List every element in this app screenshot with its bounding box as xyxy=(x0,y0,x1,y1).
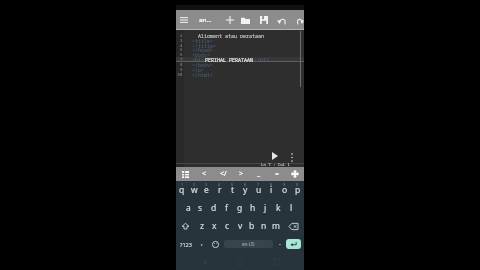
staticText: en-US xyxy=(242,241,255,247)
button[interactable]: Open folder xyxy=(237,10,254,30)
button[interactable]: r xyxy=(213,181,226,199)
staticText: w xyxy=(191,184,198,196)
staticText: Aligment atau perataan xyxy=(192,33,265,38)
button[interactable]: d xyxy=(207,199,220,217)
button[interactable]: p xyxy=(291,181,304,199)
button[interactable]: u xyxy=(252,181,265,199)
staticText: PERIHAL PERATAAN xyxy=(205,57,254,62)
button[interactable]: Undo xyxy=(273,10,290,30)
button[interactable]: settings xyxy=(286,167,304,181)
button[interactable]: eq xyxy=(268,167,286,181)
button[interactable]: m xyxy=(270,217,282,235)
staticText: l xyxy=(290,202,293,214)
staticText: v xyxy=(238,220,243,232)
staticText: . xyxy=(279,238,281,248)
button[interactable]: lt xyxy=(195,167,214,181)
button[interactable]: v xyxy=(234,217,246,235)
staticText: <body> xyxy=(192,52,211,57)
button[interactable]: Emoji xyxy=(208,235,222,253)
button[interactable]: a xyxy=(182,199,194,217)
button[interactable]: s xyxy=(194,199,207,217)
staticText: 5 xyxy=(180,47,183,52)
button[interactable]: q xyxy=(176,181,188,199)
staticText: </h1> xyxy=(254,57,270,62)
button[interactable]: n xyxy=(258,217,270,235)
staticText: o xyxy=(282,184,288,196)
button[interactable]: j xyxy=(259,199,272,217)
staticText: </p> xyxy=(192,67,205,72)
button[interactable]: Run xyxy=(269,150,281,162)
staticText: 8 xyxy=(180,62,183,67)
staticText: 9 xyxy=(180,67,183,72)
staticText: g xyxy=(237,202,243,214)
button[interactable]: l xyxy=(285,199,298,217)
button[interactable]: k xyxy=(272,199,285,217)
staticText: x xyxy=(212,220,217,232)
staticText: d xyxy=(211,202,217,214)
button[interactable]: ?123 xyxy=(176,235,196,253)
staticText: > xyxy=(239,169,244,179)
staticText: q xyxy=(179,184,185,196)
button[interactable]: i xyxy=(265,181,278,199)
button[interactable]: e xyxy=(200,181,213,199)
staticText: = xyxy=(275,169,280,179)
button[interactable]: Period xyxy=(274,235,286,253)
staticText: e xyxy=(204,184,209,196)
button[interactable]: Backspace xyxy=(282,217,304,235)
staticText: 5 xyxy=(231,182,234,187)
button[interactable]: b xyxy=(246,217,258,235)
staticText: </title> xyxy=(192,43,217,48)
button[interactable]: Redo xyxy=(297,10,304,30)
button[interactable]: Shift xyxy=(176,217,195,235)
button[interactable]: More options xyxy=(287,152,297,162)
button[interactable]: t xyxy=(226,181,239,199)
staticText: r xyxy=(218,184,222,196)
button[interactable]: New xyxy=(221,10,238,30)
button[interactable]: Comma xyxy=(196,235,208,253)
button[interactable]: Space xyxy=(224,240,273,248)
button[interactable]: Menu xyxy=(176,10,192,30)
button[interactable]: g xyxy=(233,199,246,217)
staticText: 2 xyxy=(193,182,196,187)
staticText: 7 xyxy=(257,182,260,187)
button[interactable]: c xyxy=(221,217,234,235)
staticText: 6 xyxy=(244,182,247,187)
staticText: </ xyxy=(220,169,227,179)
button[interactable]: w xyxy=(188,181,200,199)
button[interactable]: Save xyxy=(255,10,272,30)
button[interactable]: an... xyxy=(199,10,217,30)
staticText: p xyxy=(295,184,301,196)
staticText: m xyxy=(272,220,280,232)
staticText: , xyxy=(201,238,203,248)
staticText: b xyxy=(249,220,255,232)
staticText: 6 xyxy=(180,52,183,57)
staticText: n xyxy=(261,220,267,232)
staticText: 9 xyxy=(283,182,286,187)
staticText: 4 xyxy=(180,43,183,48)
staticText: </body> xyxy=(192,62,214,67)
button[interactable]: kb xyxy=(176,167,195,181)
staticText: 2 xyxy=(180,33,183,38)
staticText: 3 xyxy=(205,182,208,187)
button[interactable]: Enter xyxy=(286,239,301,249)
button[interactable]: x xyxy=(208,217,221,235)
staticText: ?123 xyxy=(180,241,192,248)
staticText: _ xyxy=(257,169,261,179)
staticText: k xyxy=(276,202,281,214)
button[interactable]: gt xyxy=(232,167,250,181)
button[interactable]: f xyxy=(220,199,233,217)
staticText: a xyxy=(186,202,191,214)
button[interactable]: o xyxy=(278,181,291,199)
button[interactable]: y xyxy=(239,181,252,199)
button[interactable]: h xyxy=(246,199,259,217)
staticText: t xyxy=(231,184,235,196)
staticText: 10 xyxy=(177,72,183,77)
button[interactable]: us xyxy=(250,167,268,181)
button[interactable]: ltsl xyxy=(214,167,232,181)
staticText: c xyxy=(225,220,230,232)
staticText: z xyxy=(200,220,204,232)
button[interactable]: z xyxy=(195,217,208,235)
